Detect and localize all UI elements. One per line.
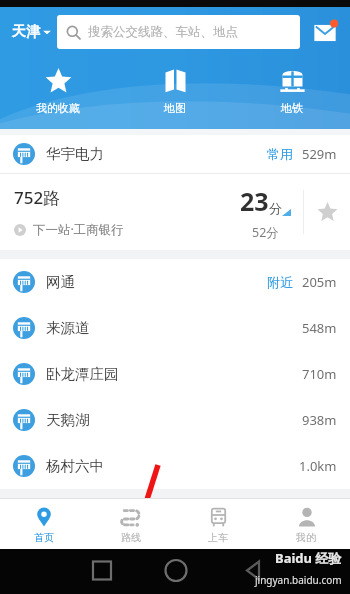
staticText: 752路 (14, 186, 61, 209)
staticText: 我的 (296, 531, 316, 544)
button[interactable]: 来源道 (0, 305, 350, 351)
staticText: 分 (269, 200, 282, 216)
staticText: Baidu 经验 (275, 549, 342, 567)
button[interactable]: 搜索公交线路、车站、地点 (57, 15, 300, 49)
button[interactable]: 杨村六中 (0, 443, 350, 489)
button[interactable]: Favourite (304, 174, 350, 250)
staticText: 杨村六中 (46, 457, 104, 475)
button[interactable]: 华宇电力 (0, 135, 350, 173)
button[interactable]: Messages (308, 15, 342, 49)
staticText: 搜索公交线路、车站、地点 (88, 24, 238, 40)
staticText: 我的收藏 (36, 101, 80, 115)
staticText: 华宇电力 (46, 145, 104, 163)
button[interactable]: 天津 (0, 17, 57, 47)
staticText: 地图 (164, 101, 186, 115)
staticText: 23 (240, 184, 269, 218)
staticText: 地铁 (281, 101, 303, 115)
staticText: 下一站·工商银行 (33, 221, 124, 238)
button[interactable]: 上车 (174, 499, 262, 549)
staticText: 205m (302, 273, 337, 291)
staticText: 710m (302, 365, 337, 383)
button[interactable]: 路线 (87, 499, 174, 549)
button[interactable]: 我的收藏 (0, 59, 116, 125)
staticText: 路线 (121, 531, 141, 544)
staticText: 1.0km (299, 457, 337, 475)
button[interactable]: 天鹅湖 (0, 397, 350, 443)
staticText: 938m (302, 411, 337, 429)
staticText: 附近 (267, 274, 293, 290)
button[interactable]: 卧龙潭庄园 (0, 351, 350, 397)
staticText: 来源道 (46, 319, 90, 337)
staticText: jingyan.baidu.com (255, 573, 342, 587)
staticText: 首页 (34, 531, 54, 544)
staticText: 天鹅湖 (46, 411, 90, 429)
button[interactable]: 首页 (0, 499, 87, 549)
button[interactable]: 地铁 (233, 59, 350, 125)
staticText: 天津 (12, 23, 40, 41)
button[interactable]: 我的 (262, 499, 350, 549)
staticText: 网通 (46, 273, 75, 291)
staticText: 上车 (208, 531, 228, 544)
staticText: 529m (302, 145, 337, 163)
button[interactable]: 网通 (0, 259, 350, 305)
staticText: 548m (302, 319, 337, 337)
staticText: 卧龙潭庄园 (46, 365, 119, 383)
staticText: 52分 (252, 224, 279, 241)
button[interactable]: 地图 (116, 59, 233, 125)
button[interactable]: 752路 (0, 174, 350, 250)
staticText: 常用 (267, 146, 293, 162)
